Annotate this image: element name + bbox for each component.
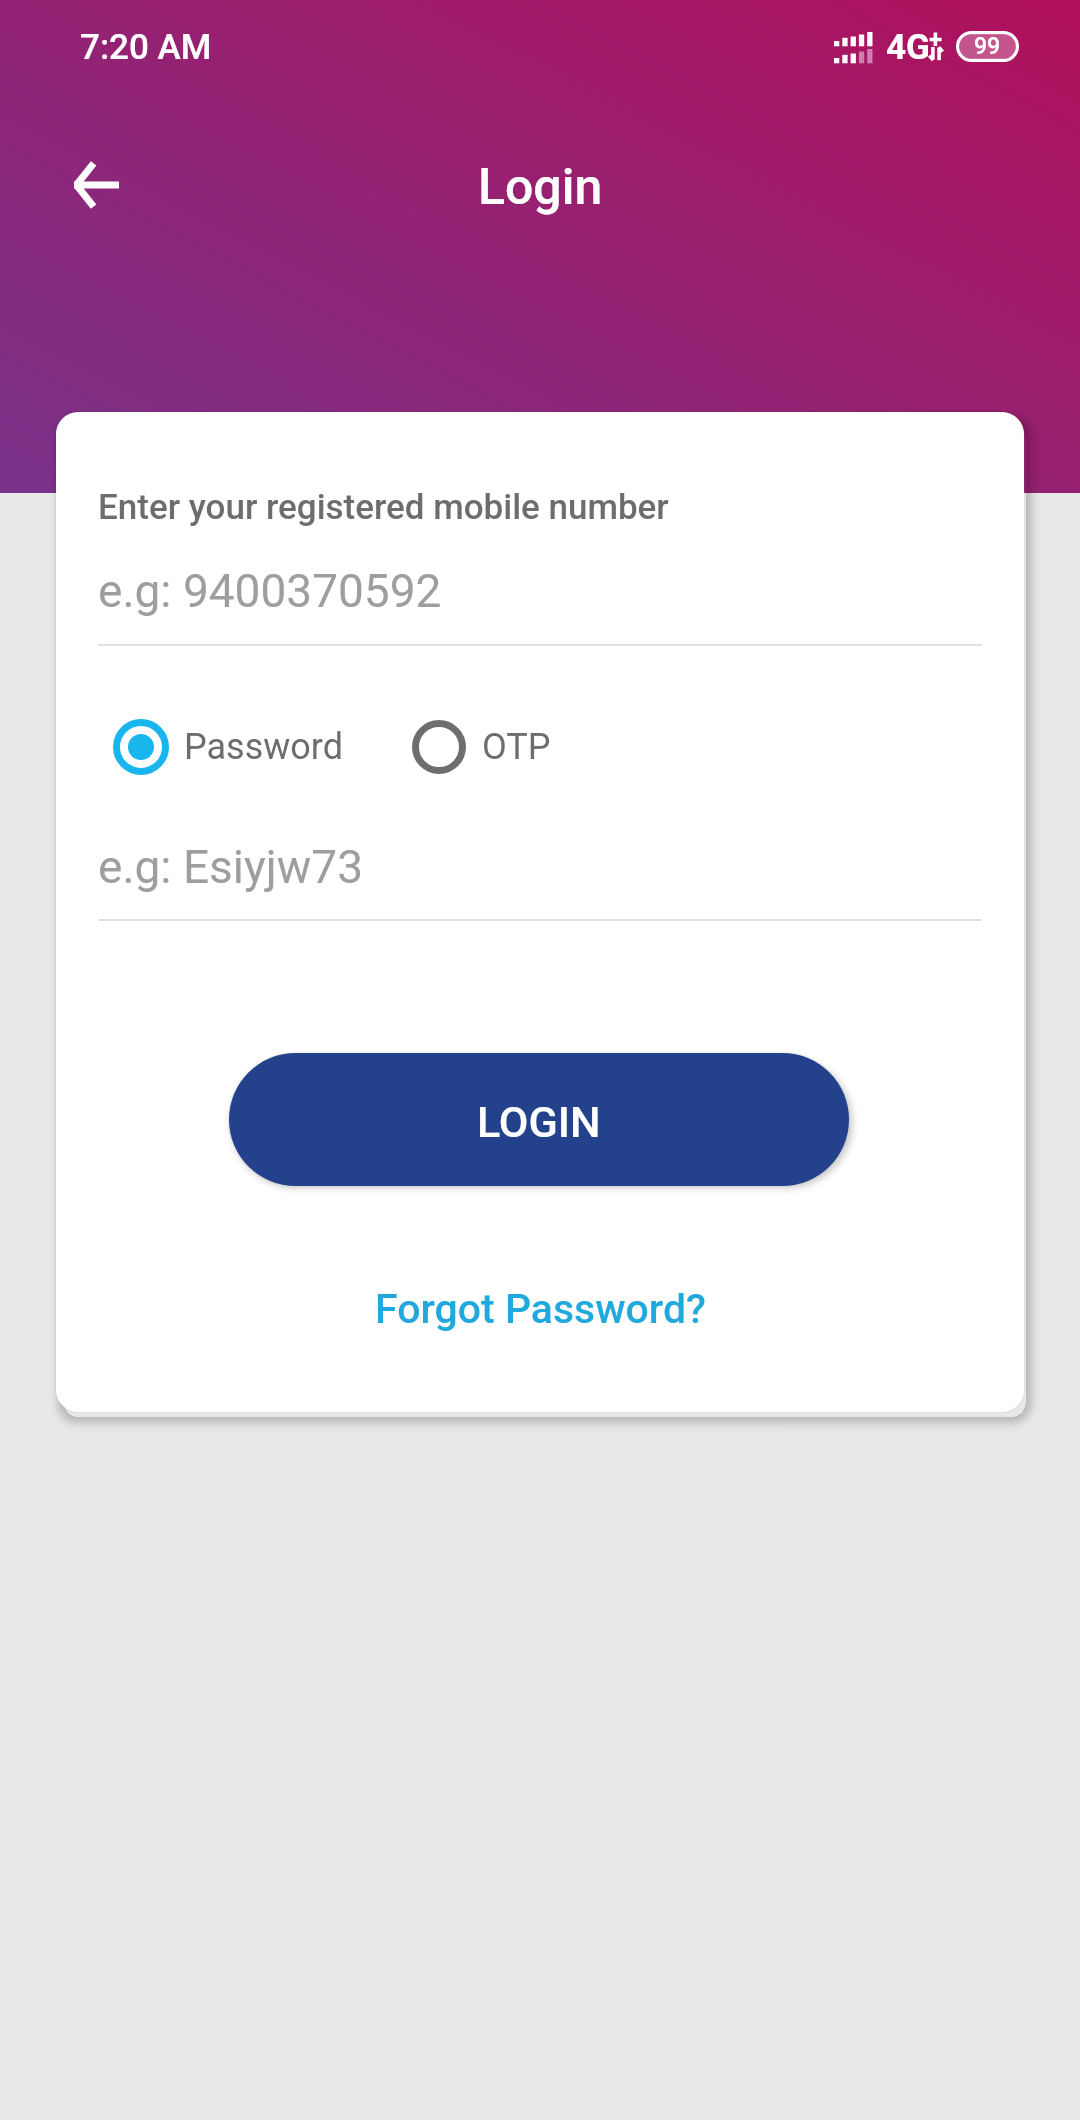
staticText: e.g: 9400370592 <box>98 564 442 618</box>
button[interactable]: Password field <box>98 828 982 922</box>
staticText: OTP <box>482 726 551 768</box>
staticText: Password <box>184 726 344 768</box>
button[interactable]: Password <box>112 718 352 776</box>
staticText: 4G <box>886 27 930 68</box>
button[interactable]: Back <box>56 145 136 225</box>
staticText: LOGIN <box>477 1097 601 1147</box>
staticText: Enter your registered mobile number <box>98 487 669 528</box>
staticText: 99 <box>974 33 1001 60</box>
staticText: e.g: Esiyjw73 <box>98 840 364 894</box>
staticText: Login <box>478 158 603 217</box>
button[interactable]: Forgot Password? <box>361 1275 720 1343</box>
button[interactable]: Mobile number field <box>98 552 982 646</box>
staticText: 7:20 AM <box>80 27 212 68</box>
staticText: Forgot Password? <box>375 1285 706 1333</box>
button[interactable]: LOGIN <box>229 1053 849 1186</box>
button[interactable]: OTP <box>411 719 559 775</box>
